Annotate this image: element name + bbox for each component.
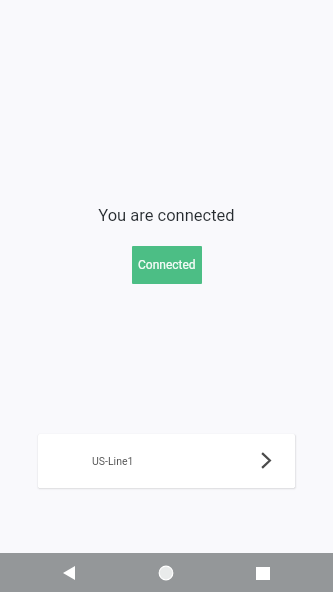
button[interactable]: Home [149,556,183,590]
staticText: You are connected [98,206,235,225]
button[interactable]: Connected [132,246,202,284]
button[interactable]: Back [52,556,86,590]
button[interactable]: Recents [246,556,280,590]
staticText: Connected [138,258,196,272]
button[interactable]: US-Line1 [38,434,295,488]
staticText: US-Line1 [92,455,134,467]
